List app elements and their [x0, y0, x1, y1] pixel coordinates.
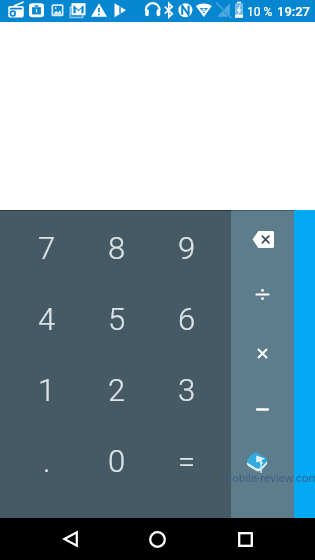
staticText: .	[43, 443, 51, 479]
staticText: 0	[108, 443, 126, 479]
button[interactable]: Multiply	[231, 339, 294, 367]
button[interactable]: Divide	[231, 280, 294, 308]
staticText: 19:27	[277, 4, 310, 19]
staticText: 2	[108, 372, 126, 408]
button[interactable]: 3	[152, 354, 222, 425]
button[interactable]: Home	[135, 518, 179, 560]
button[interactable]: 5	[82, 283, 152, 354]
button[interactable]: Add	[231, 453, 294, 481]
staticText: 3	[178, 372, 196, 408]
button[interactable]: 6	[152, 283, 222, 354]
staticText: =	[178, 443, 196, 479]
button[interactable]: =	[152, 425, 222, 496]
button[interactable]: Back	[48, 518, 92, 560]
staticText: 6	[178, 301, 196, 337]
button[interactable]: .	[12, 425, 82, 496]
staticText: 1	[38, 372, 56, 408]
button[interactable]: Subtract	[231, 395, 294, 423]
staticText: 5	[108, 301, 126, 337]
staticText: mobile-review.com	[222, 471, 315, 485]
staticText: 7	[38, 230, 56, 266]
button[interactable]: 8	[82, 212, 152, 283]
button[interactable]: 1	[12, 354, 82, 425]
button[interactable]: 0	[82, 425, 152, 496]
staticText: 10 %	[247, 5, 273, 19]
staticText: 4	[38, 301, 56, 337]
button[interactable]: Backspace	[231, 224, 294, 254]
staticText: 9	[178, 230, 196, 266]
staticText: 8	[108, 230, 126, 266]
button[interactable]: 2	[82, 354, 152, 425]
button[interactable]: Recent apps	[223, 518, 267, 560]
button[interactable]: 9	[152, 212, 222, 283]
button[interactable]: 7	[12, 212, 82, 283]
button[interactable]: 4	[12, 283, 82, 354]
